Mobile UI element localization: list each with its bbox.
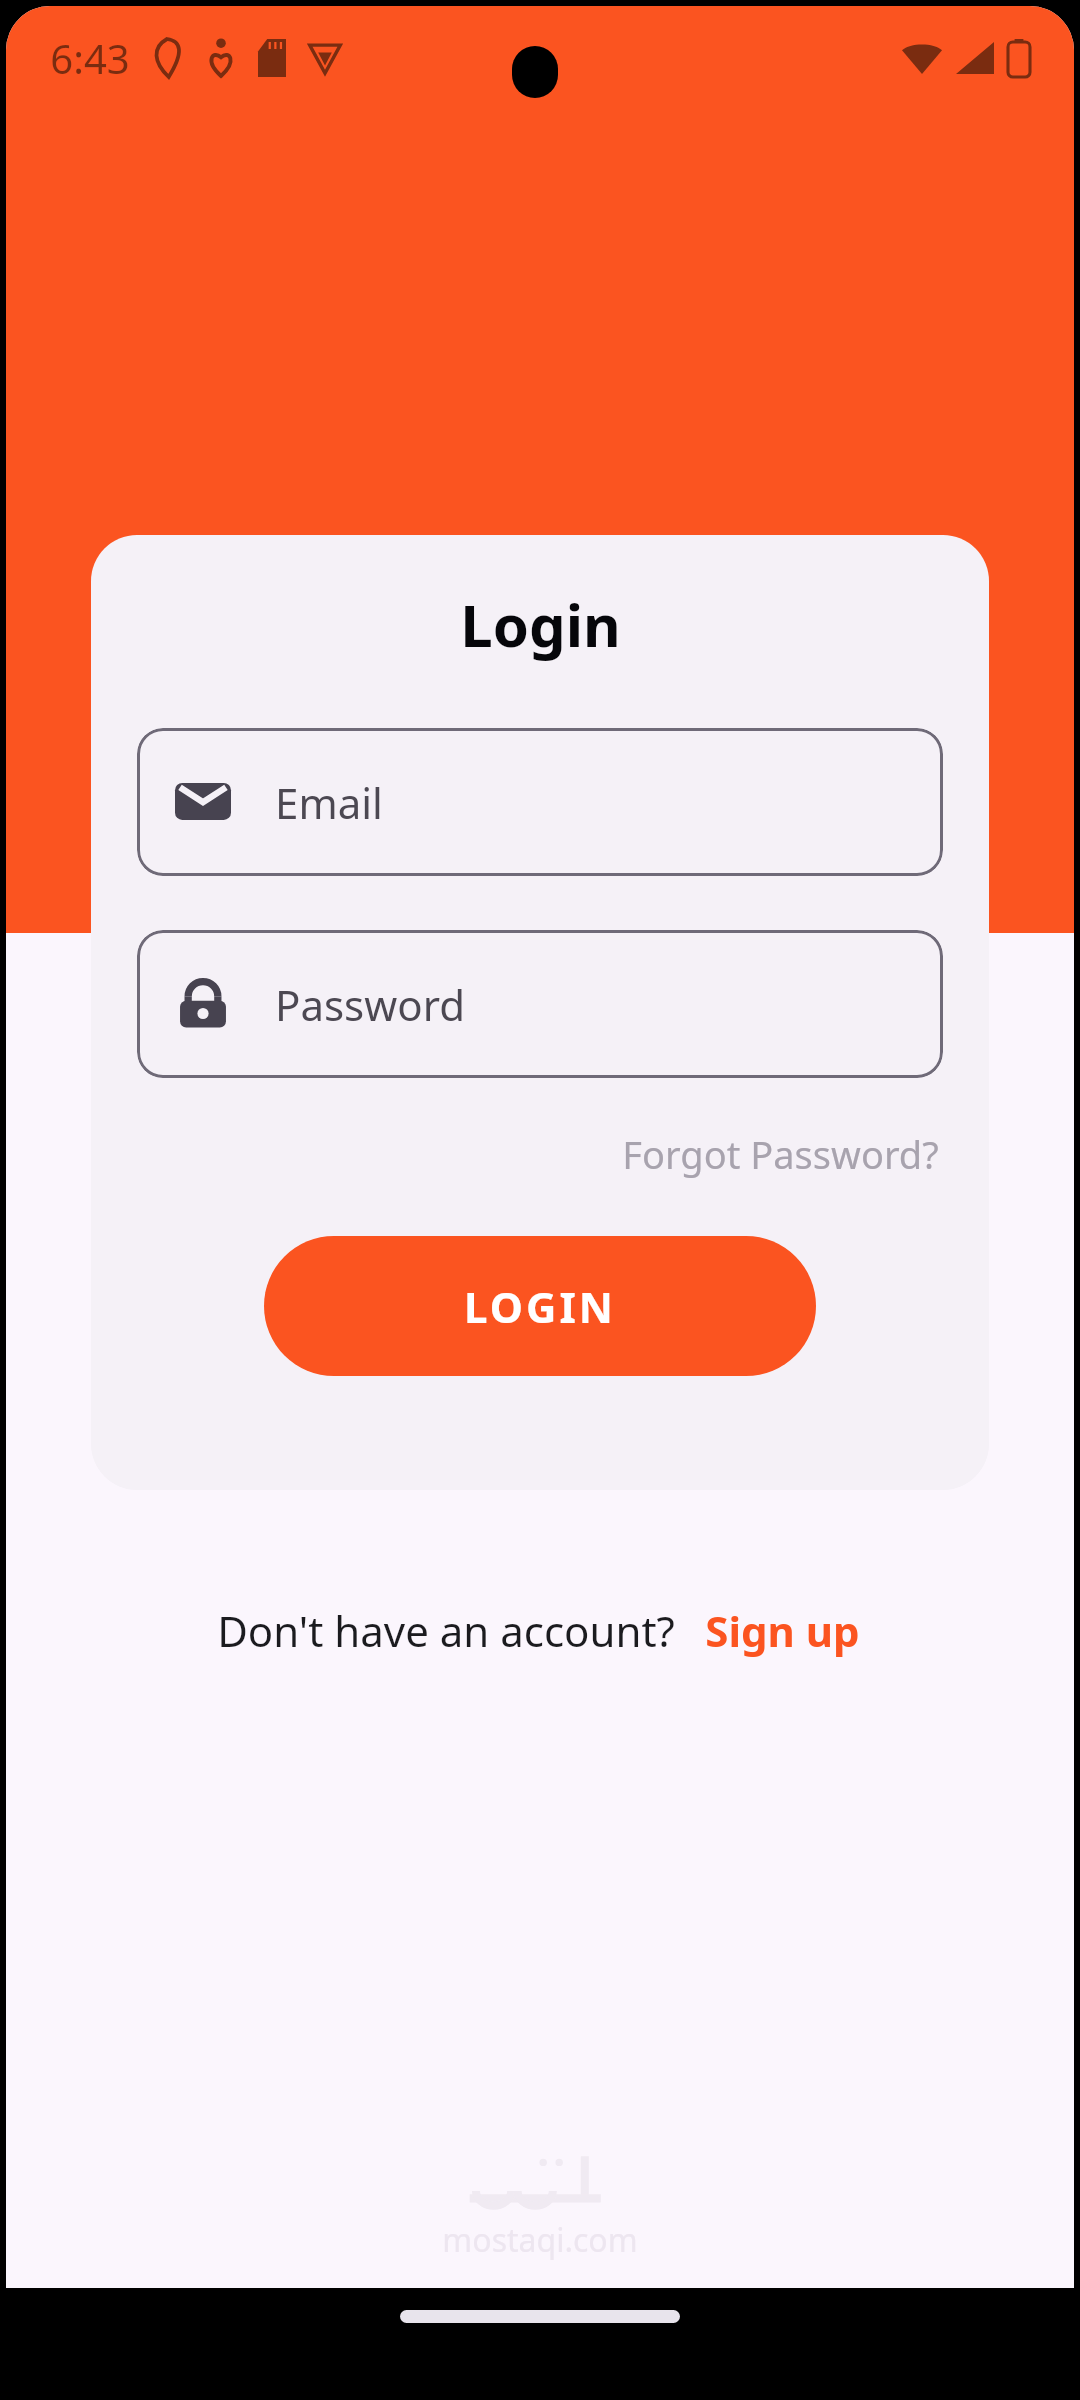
button[interactable]: Forgot Password? [618,1122,943,1186]
other: Password [175,976,231,1032]
staticText: mostaqi.com [442,2218,638,2262]
button[interactable]: Sign up [701,1596,864,1665]
staticText: Email [275,774,383,831]
button[interactable]: LOGIN [264,1236,816,1376]
staticText: Don't have an account? [217,1602,675,1659]
staticText: 6:43 [50,31,130,85]
button[interactable]: Password [137,930,943,1078]
staticText: Login [460,585,621,664]
staticText: LOGIN [464,1278,616,1335]
staticText: Sign up [705,1602,860,1659]
staticText: Password [275,976,465,1033]
staticText: Forgot Password? [622,1128,939,1180]
button[interactable]: Email [137,728,943,876]
other: Email [175,774,231,830]
